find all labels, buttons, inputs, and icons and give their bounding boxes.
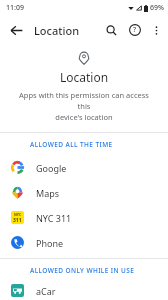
staticText: Google (36, 162, 67, 174)
staticText: 311 (13, 217, 22, 224)
staticText: Location (34, 23, 100, 38)
staticText: 11:09 (6, 3, 24, 13)
staticText: Maps (36, 187, 60, 199)
button[interactable]: aCar (0, 281, 168, 300)
staticText: NYC (14, 212, 22, 217)
staticText: ? (133, 25, 137, 35)
button[interactable]: Back (4, 18, 28, 42)
staticText: Phone (36, 237, 64, 249)
staticText: NYC 311 (36, 212, 72, 224)
button[interactable]: NYC (0, 205, 168, 230)
button[interactable]: Phone (0, 230, 168, 255)
button[interactable]: Help (124, 19, 146, 41)
button[interactable]: Google (0, 155, 168, 180)
staticText: Apps with this permission can access thi… (12, 90, 156, 122)
staticText: ALLOWED ALL THE TIME (30, 140, 113, 149)
staticText: Location (60, 69, 109, 85)
staticText: ALLOWED ONLY WHILE IN USE (30, 266, 135, 275)
staticText: 69% (150, 3, 164, 13)
button[interactable]: More options (146, 20, 166, 40)
staticText: aCar (36, 285, 56, 297)
button[interactable]: Search (100, 19, 122, 41)
button[interactable]: Maps (0, 180, 168, 205)
